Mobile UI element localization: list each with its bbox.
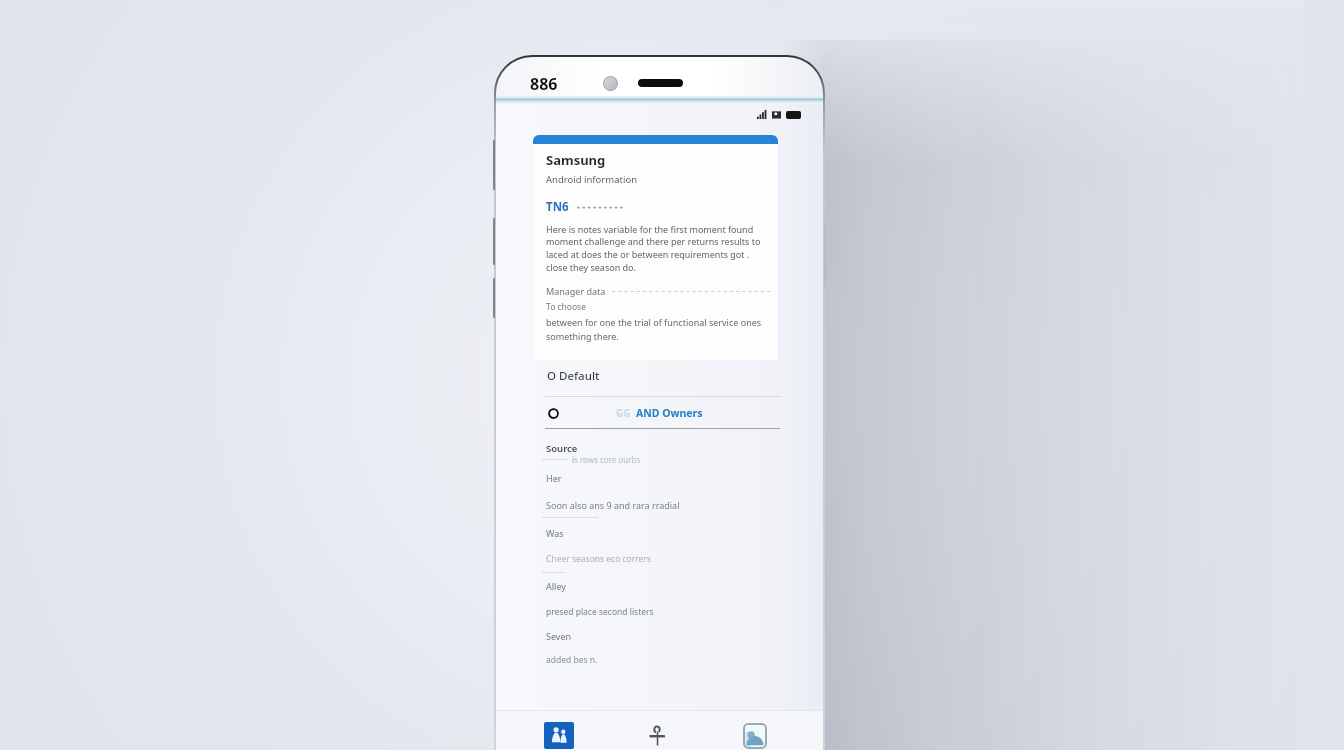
staticText: added bes n. xyxy=(546,654,598,666)
staticText: presed place second listers xyxy=(546,606,654,618)
button[interactable]: Gallery xyxy=(706,716,804,750)
staticText: something there. xyxy=(546,330,619,342)
staticText: Android information xyxy=(546,173,638,186)
button[interactable]: presed place second listers xyxy=(494,605,825,619)
staticText: Alley xyxy=(546,580,566,592)
staticText: Cheer seasons eco corrers xyxy=(546,553,651,565)
staticText: 886 xyxy=(530,73,558,95)
staticText: Here is notes variable for the first mom… xyxy=(546,223,761,274)
staticText: TN6 xyxy=(546,199,569,215)
staticText: Source xyxy=(546,442,578,455)
staticText: Her xyxy=(546,472,562,484)
staticText: Manager data xyxy=(546,285,606,297)
button[interactable]: Was xyxy=(494,526,825,540)
staticText: AND Owners xyxy=(636,406,703,420)
button[interactable]: added bes n. xyxy=(494,653,825,667)
button[interactable]: Seven xyxy=(494,629,825,643)
staticText: Samsung xyxy=(546,151,606,169)
button[interactable]: Alley xyxy=(494,579,825,593)
staticText: is rows core ourbs xyxy=(572,454,641,465)
staticText: Seven xyxy=(546,630,572,642)
button[interactable]: Source xyxy=(494,441,825,456)
button[interactable]: Add xyxy=(608,716,706,750)
staticText: GG xyxy=(616,406,631,420)
button[interactable]: O Default xyxy=(494,364,825,388)
button[interactable]: Contacts xyxy=(510,716,608,750)
button[interactable]: GG xyxy=(494,400,825,426)
staticText: O Default xyxy=(547,368,600,384)
staticText: To choose xyxy=(546,301,586,313)
button[interactable]: Cheer seasons eco corrers xyxy=(494,552,825,566)
staticText: between for one the trial of functional … xyxy=(546,316,762,328)
button[interactable]: Her xyxy=(494,471,825,485)
button[interactable]: Soon also ans 9 and rara rradial xyxy=(494,498,825,512)
staticText: Soon also ans 9 and rara rradial xyxy=(546,499,680,511)
staticText: Was xyxy=(546,527,564,539)
